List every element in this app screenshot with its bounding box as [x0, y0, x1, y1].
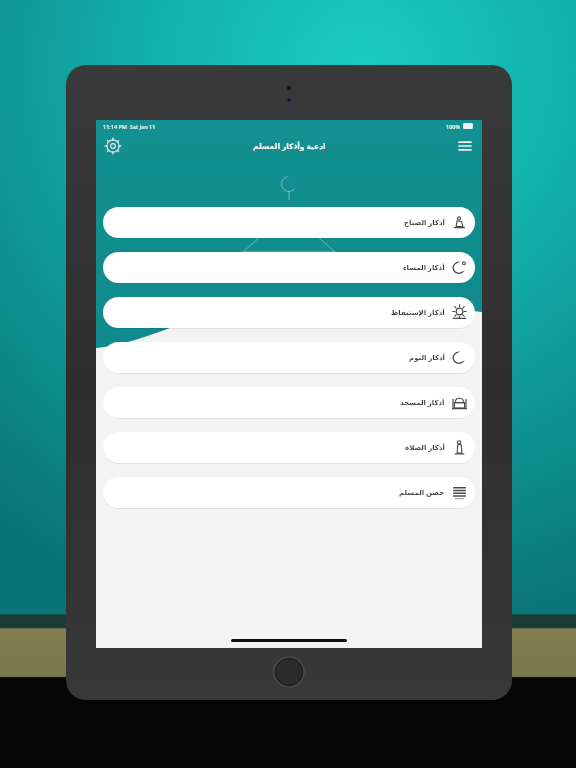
- staticText: 100%: [446, 123, 461, 130]
- button[interactable]: أذكار الإستيقاظ: [103, 297, 475, 328]
- staticText: أذكار الصلاة: [405, 443, 445, 453]
- staticText: أذكار النوم: [409, 353, 445, 363]
- staticText: أذكار الصباح: [404, 218, 445, 228]
- staticText: ادعية وأذكار المسلم: [253, 141, 326, 151]
- staticText: حصن المسلم: [399, 488, 445, 498]
- button[interactable]: Settings: [102, 135, 124, 157]
- button[interactable]: أذكار الصباح: [103, 207, 475, 238]
- button[interactable]: أذكار المساء: [103, 252, 475, 283]
- button[interactable]: Menu: [454, 135, 476, 157]
- staticText: أذكار المساء: [403, 263, 445, 273]
- button[interactable]: حصن المسلم: [103, 477, 475, 508]
- button[interactable]: أذكار الصلاة: [103, 432, 475, 463]
- staticText: أذكار الإستيقاظ: [391, 308, 445, 318]
- button[interactable]: أذكار النوم: [103, 342, 475, 373]
- button[interactable]: أذكار المسجد: [103, 387, 475, 418]
- staticText: 11:14 PM Sat Jan 11: [103, 123, 156, 130]
- staticText: أذكار المسجد: [400, 398, 445, 408]
